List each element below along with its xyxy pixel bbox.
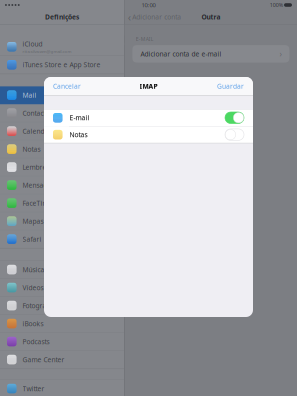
button[interactable]: Notas [44, 126, 253, 143]
staticText: iTunes Store e App Store [22, 60, 100, 69]
staticText: Safari [22, 235, 41, 244]
staticText: Mail [22, 91, 36, 100]
button[interactable]: Mapas [0, 212, 124, 230]
staticText: FaceTime [22, 199, 52, 208]
button[interactable]: E-mail [44, 109, 253, 126]
button[interactable]: iCloud [0, 38, 124, 56]
staticText: Cancelar [53, 82, 81, 91]
staticText: 100% [270, 1, 283, 9]
staticText: 10:00 [141, 1, 155, 9]
staticText: Notas [69, 130, 87, 139]
button[interactable]: Game Center [0, 351, 124, 369]
staticText: iCloud [22, 39, 42, 48]
staticText: ‹ [128, 10, 131, 24]
button[interactable]: ‹ [125, 10, 181, 24]
button[interactable]: FaceTime [0, 194, 124, 212]
button[interactable]: Mensagens [0, 176, 124, 194]
staticText: Adicionar conta de e-mail [140, 49, 221, 58]
staticText: Lembretes [22, 163, 55, 172]
staticText: Contactos [22, 109, 52, 118]
staticText: Fotografias [22, 301, 57, 310]
button[interactable]: Podcasts [0, 333, 124, 351]
button[interactable]: Safari [0, 230, 124, 248]
button[interactable]: iTunes Store e App Store [0, 56, 124, 74]
staticText: Guardar [217, 82, 244, 91]
button[interactable]: Twitter [0, 380, 124, 396]
staticText: Mensagens [22, 181, 58, 190]
button[interactable]: Notas [0, 140, 124, 158]
staticText: rita.silva.wm@gmail.com [22, 48, 71, 54]
staticText: Adicionar conta [132, 12, 181, 22]
staticText: Música [22, 265, 44, 274]
button[interactable]: Música [0, 261, 124, 279]
button[interactable]: Mail [0, 86, 124, 104]
staticText: Podcasts [22, 337, 49, 346]
button[interactable]: Adicionar conta de e-mail [132, 45, 289, 63]
staticText: Game Center [22, 355, 64, 364]
staticText: Notas [22, 145, 40, 154]
staticText: Outra [201, 12, 220, 22]
staticText: E-mail [69, 113, 89, 122]
button[interactable]: iBooks [0, 315, 124, 333]
staticText: E-MAIL [136, 36, 154, 42]
staticText: › [279, 48, 281, 59]
button[interactable]: Vídeos [0, 279, 124, 297]
button[interactable]: Fotografias [0, 297, 124, 315]
button[interactable]: Lembretes [0, 158, 124, 176]
staticText: iBooks [22, 319, 43, 328]
staticText: Twitter [22, 384, 44, 393]
button[interactable]: Calendário [0, 122, 124, 140]
button[interactable]: Guardar [211, 77, 253, 95]
staticText: Calendário [22, 127, 57, 136]
button[interactable]: Cancelar [44, 77, 87, 95]
staticText: IMAP [139, 82, 157, 91]
staticText: Vídeos [22, 283, 43, 292]
staticText: Definições [45, 12, 79, 22]
staticText: Mapas [22, 217, 43, 226]
button[interactable]: Contactos [0, 104, 124, 122]
